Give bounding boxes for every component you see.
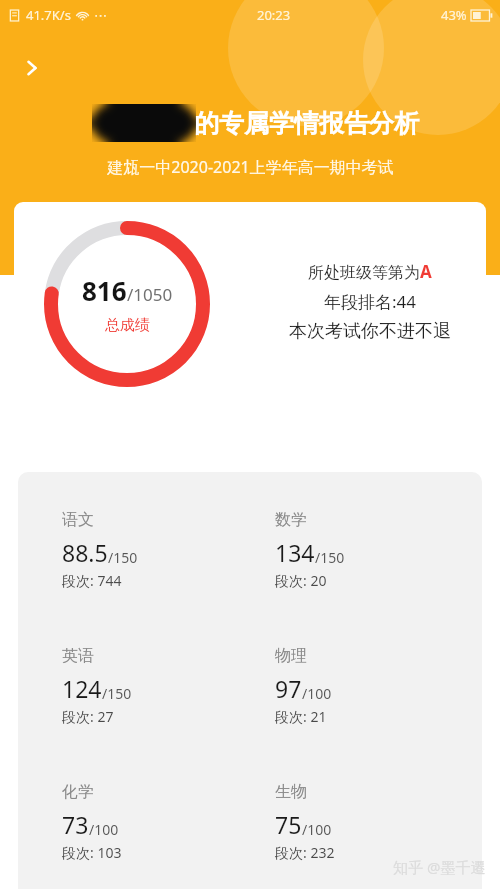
staticText: 英语 <box>62 646 94 666</box>
button[interactable]: Next <box>12 48 52 88</box>
staticText: 73 <box>62 809 89 840</box>
staticText: /1050 <box>127 283 173 306</box>
staticText: 段次: 744 <box>62 571 122 590</box>
staticText: 134 <box>275 537 315 568</box>
staticText: 43% <box>441 6 467 24</box>
staticText: 段次: 27 <box>62 707 114 726</box>
button[interactable]: 数学 <box>275 510 465 590</box>
staticText: 段次: 103 <box>62 843 122 862</box>
staticText: 建瓭一中2020-2021上学年高一期中考试 <box>107 156 394 178</box>
button[interactable]: 物理 <box>275 646 465 726</box>
staticText: 知乎 @墨千遷 <box>393 857 486 877</box>
staticText: 化学 <box>62 782 94 802</box>
staticText: 816 <box>82 273 127 308</box>
button[interactable]: 英语 <box>62 646 252 726</box>
staticText: 数学 <box>275 510 307 530</box>
staticText: 的专属学情报告分析 <box>194 108 419 139</box>
staticText: 97 <box>275 673 302 704</box>
staticText: 88.5 <box>62 537 108 568</box>
staticText: 所处班级等第为 <box>308 263 420 283</box>
staticText: /100 <box>89 820 119 839</box>
staticText: /150 <box>102 684 132 703</box>
staticText: 总成绩 <box>105 316 150 335</box>
staticText: 段次: 20 <box>275 571 327 590</box>
staticText: 语文 <box>62 510 94 530</box>
button[interactable]: 生物 <box>275 782 465 862</box>
staticText: 段次: 232 <box>275 843 335 862</box>
button[interactable]: 816 <box>14 202 486 440</box>
staticText: A <box>420 260 432 283</box>
button[interactable]: 语文 <box>62 510 252 590</box>
staticText: ⋯ <box>94 8 107 23</box>
staticText: /150 <box>108 548 138 567</box>
staticText: 段次: 21 <box>275 707 327 726</box>
staticText: 124 <box>62 673 102 704</box>
staticText: 生物 <box>275 782 307 802</box>
staticText: 20:23 <box>257 6 291 24</box>
staticText: /150 <box>315 548 345 567</box>
button[interactable]: 化学 <box>62 782 252 862</box>
staticText: 41.7K/s <box>26 6 71 24</box>
staticText: /100 <box>302 684 332 703</box>
staticText: /100 <box>302 820 332 839</box>
staticText: 75 <box>275 809 302 840</box>
staticText: 本次考试你不进不退 <box>289 320 451 343</box>
staticText: 物理 <box>275 646 307 666</box>
staticText: 年段排名:44 <box>324 290 417 313</box>
